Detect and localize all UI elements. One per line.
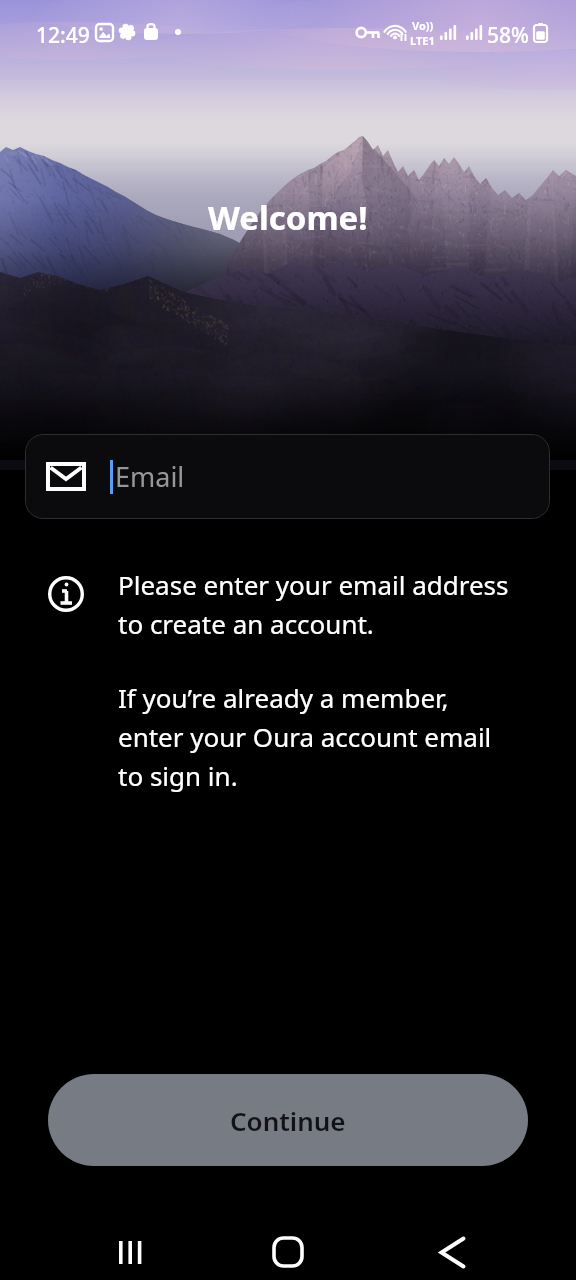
button[interactable]: Recent apps bbox=[98, 1224, 162, 1280]
staticText: Email bbox=[115, 458, 185, 495]
staticText: Please enter your email address to creat… bbox=[118, 567, 509, 641]
staticText: If you’re already a member, enter your O… bbox=[118, 680, 492, 793]
staticText: 12:49 bbox=[36, 21, 90, 50]
button[interactable]: Back bbox=[420, 1224, 484, 1280]
staticText: Vo)) bbox=[412, 18, 434, 33]
button[interactable]: Home bbox=[256, 1224, 320, 1280]
button[interactable]: Email bbox=[25, 434, 550, 519]
staticText: 58% bbox=[487, 21, 529, 50]
staticText: Welcome! bbox=[208, 195, 368, 240]
staticText: Continue bbox=[230, 1103, 346, 1138]
staticText: LTE1 bbox=[410, 33, 435, 48]
button[interactable]: Continue bbox=[48, 1074, 528, 1166]
